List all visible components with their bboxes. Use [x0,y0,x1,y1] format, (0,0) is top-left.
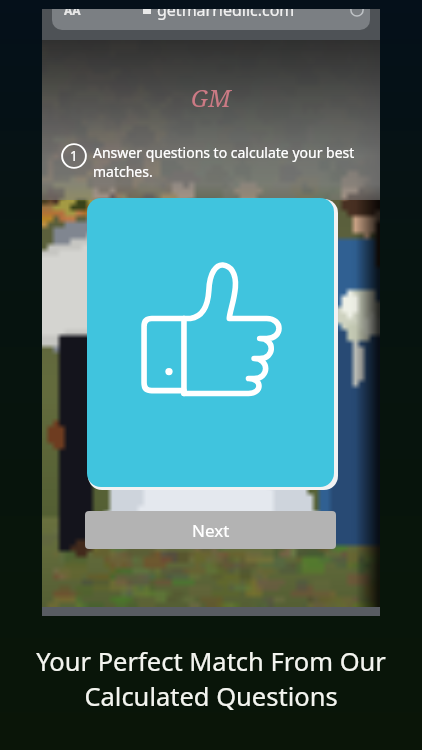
staticText: Your Perfect Match From Our [36,644,386,679]
button[interactable]: Thumbs up, like [87,198,334,487]
staticText: AA [64,9,81,18]
staticText: getmarriedlic.com [157,9,295,21]
staticText: Answer questions to calculate your best … [93,143,373,181]
staticText: 1 [70,147,78,165]
staticText: GM [191,81,231,114]
staticText: Calculated Questions [84,679,338,714]
button[interactable]: Next [85,511,336,549]
staticText: Next [192,519,230,542]
